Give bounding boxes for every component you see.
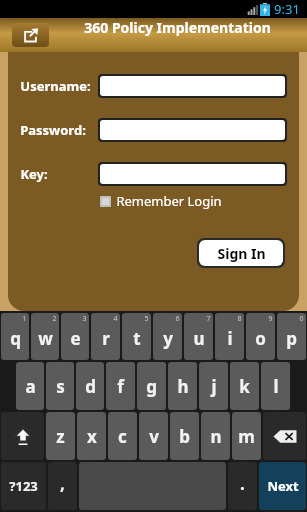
staticText: z: [56, 425, 65, 448]
staticText: j: [211, 375, 217, 398]
button[interactable]: j: [199, 362, 228, 410]
button[interactable]: 9: [246, 313, 275, 360]
staticText: t: [133, 327, 141, 350]
staticText: Username:: [20, 77, 91, 95]
staticText: .: [240, 472, 245, 495]
button[interactable]: Remember Login: [100, 192, 299, 210]
button[interactable]: 7: [184, 313, 213, 360]
button[interactable]: h: [168, 362, 197, 410]
button[interactable]: 3: [61, 313, 89, 360]
staticText: k: [239, 375, 250, 398]
staticText: v: [149, 425, 159, 448]
staticText: x: [87, 425, 97, 448]
button[interactable]: z: [46, 412, 75, 460]
staticText: 0: [299, 314, 304, 324]
staticText: 6: [175, 314, 180, 324]
staticText: 360 Policy Implementation: [84, 18, 271, 37]
staticText: f: [117, 375, 124, 398]
button[interactable]: b: [170, 412, 199, 460]
button[interactable]: a: [16, 362, 44, 410]
staticText: y: [163, 327, 173, 350]
staticText: Next: [267, 477, 299, 495]
button[interactable]: g: [137, 362, 166, 410]
staticText: a: [25, 375, 36, 398]
button[interactable]: x: [77, 412, 106, 460]
button[interactable]: s: [46, 362, 74, 410]
button[interactable]: l: [261, 362, 290, 410]
staticText: 5: [144, 314, 149, 324]
staticText: Key:: [20, 165, 48, 183]
staticText: 9: [268, 314, 273, 324]
button[interactable]: 8: [215, 313, 244, 360]
staticText: o: [255, 327, 266, 350]
staticText: n: [210, 425, 222, 448]
button[interactable]: 5: [122, 313, 151, 360]
staticText: 1: [22, 314, 27, 324]
staticText: Remember Login: [116, 192, 222, 210]
button[interactable]: [100, 76, 285, 96]
button[interactable]: k: [230, 362, 259, 410]
button[interactable]: n: [201, 412, 230, 460]
button[interactable]: ?123: [1, 462, 46, 510]
staticText: 8: [237, 314, 242, 324]
button[interactable]: Share: [12, 23, 49, 47]
button[interactable]: f: [106, 362, 135, 410]
staticText: w: [38, 327, 53, 350]
button[interactable]: d: [76, 362, 104, 410]
button[interactable]: Next: [259, 462, 306, 510]
staticText: r: [102, 327, 110, 350]
staticText: l: [273, 375, 279, 398]
button[interactable]: 1: [1, 313, 29, 360]
staticText: g: [146, 375, 157, 398]
staticText: Sign In: [217, 244, 266, 263]
staticText: 2: [52, 314, 57, 324]
staticText: 4: [113, 314, 118, 324]
button[interactable]: [100, 120, 285, 140]
staticText: m: [238, 425, 255, 448]
staticText: d: [85, 375, 96, 398]
button[interactable]: c: [108, 412, 137, 460]
staticText: u: [193, 327, 205, 350]
staticText: 9:31: [274, 0, 300, 18]
button[interactable]: Sign In: [199, 240, 283, 266]
staticText: q: [10, 327, 21, 350]
staticText: 3: [82, 314, 87, 324]
button[interactable]: .: [228, 462, 257, 510]
button[interactable]: Backspace: [263, 412, 306, 460]
staticText: ,: [60, 472, 65, 495]
button[interactable]: 4: [91, 313, 120, 360]
staticText: e: [70, 327, 81, 350]
staticText: c: [118, 425, 127, 448]
button[interactable]: [100, 164, 285, 184]
button[interactable]: Shift: [1, 412, 44, 460]
staticText: ?123: [9, 477, 38, 495]
staticText: b: [179, 425, 190, 448]
staticText: 7: [206, 314, 211, 324]
staticText: Password:: [20, 121, 86, 139]
button[interactable]: 0: [277, 313, 306, 360]
staticText: h: [177, 375, 189, 398]
button[interactable]: v: [139, 412, 168, 460]
staticText: s: [56, 375, 65, 398]
button[interactable]: 6: [153, 313, 182, 360]
staticText: i: [227, 327, 233, 350]
staticText: p: [286, 327, 297, 350]
button[interactable]: ,: [48, 462, 77, 510]
button[interactable]: m: [232, 412, 261, 460]
button[interactable]: 2: [31, 313, 59, 360]
